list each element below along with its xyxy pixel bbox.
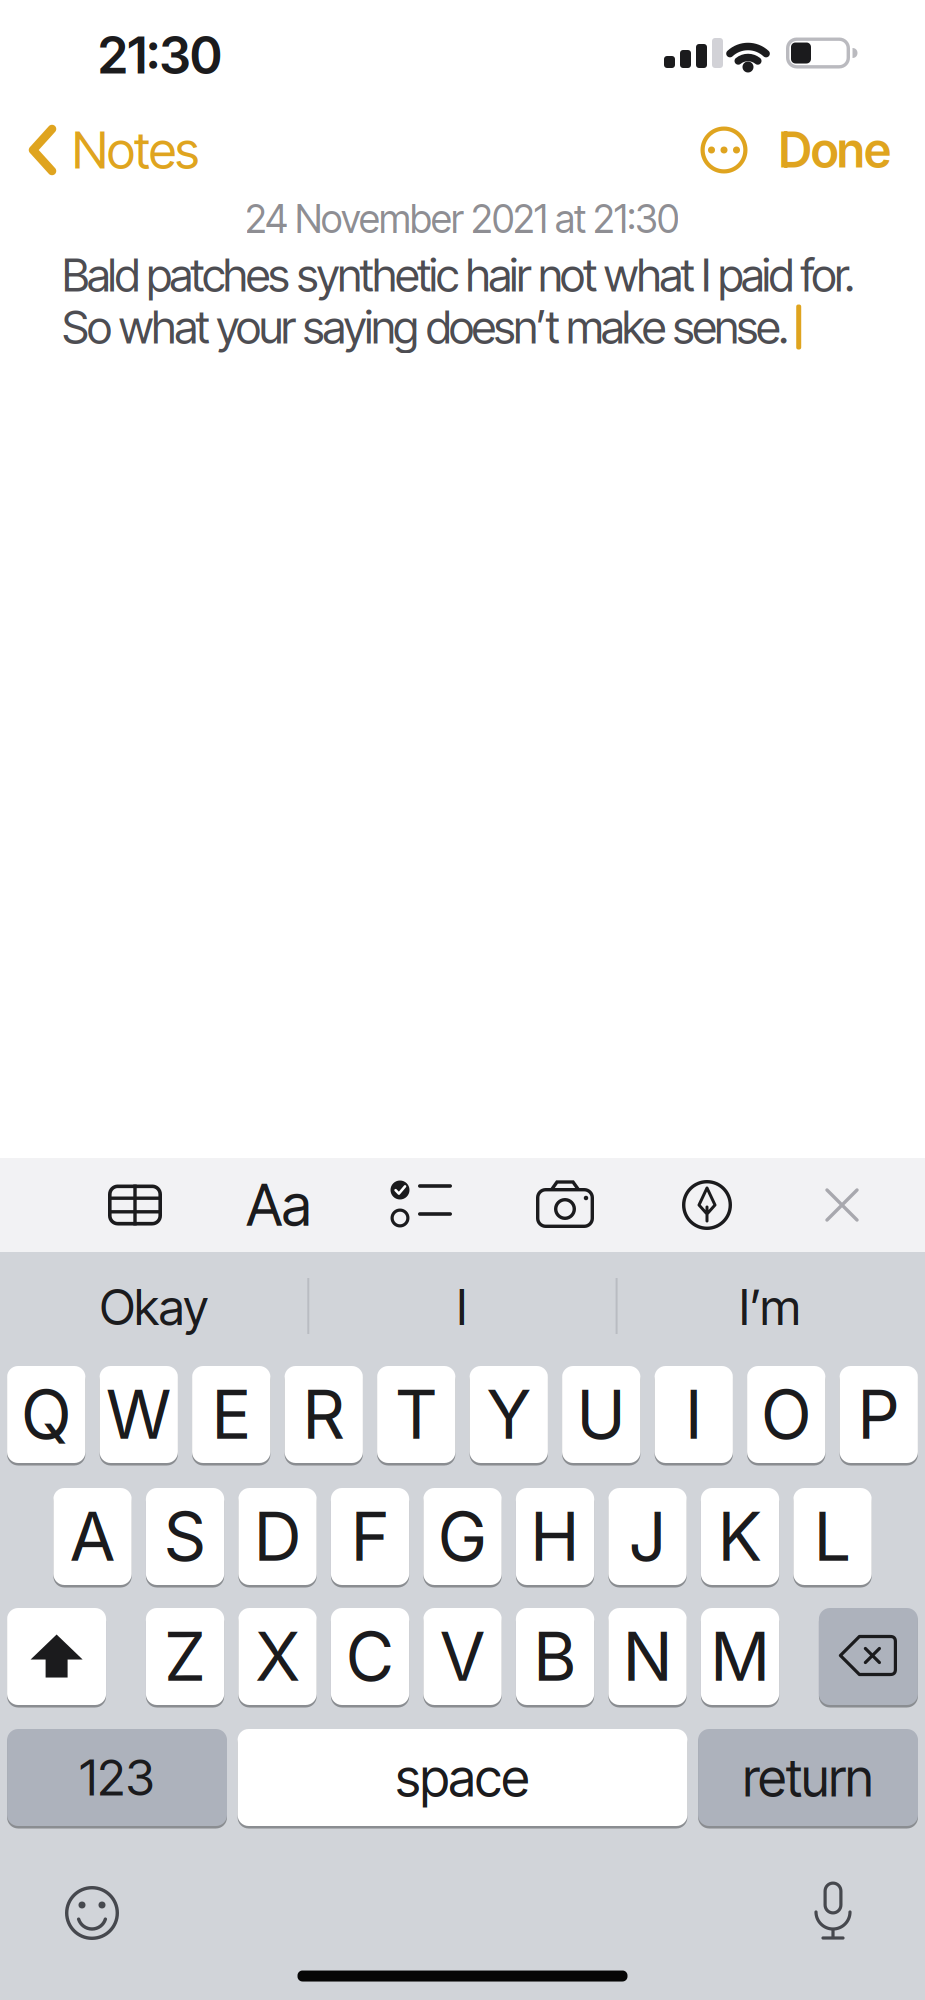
staticText: Okay xyxy=(100,1277,208,1337)
button[interactable]: 123 xyxy=(7,1727,227,1827)
button[interactable]: Okay xyxy=(14,1262,294,1352)
button[interactable]: L xyxy=(793,1486,872,1586)
button[interactable]: B xyxy=(516,1606,594,1706)
staticText: P xyxy=(857,1374,900,1455)
staticText: G xyxy=(437,1496,487,1577)
button[interactable]: U xyxy=(562,1364,640,1464)
button[interactable]: D xyxy=(238,1486,317,1586)
button[interactable]: Markup xyxy=(679,1177,735,1233)
staticText: N xyxy=(622,1616,672,1697)
staticText: return xyxy=(743,1746,873,1809)
button[interactable]: space xyxy=(238,1727,687,1827)
button[interactable]: M xyxy=(701,1606,779,1706)
button[interactable]: Camera xyxy=(532,1177,598,1233)
button[interactable]: Q xyxy=(7,1364,85,1464)
staticText: J xyxy=(628,1496,666,1577)
button[interactable]: return xyxy=(698,1727,918,1827)
staticText: Z xyxy=(164,1616,206,1697)
staticText: L xyxy=(813,1496,851,1577)
staticText: I xyxy=(456,1277,467,1337)
staticText: F xyxy=(350,1496,389,1577)
staticText: I xyxy=(685,1374,703,1455)
button[interactable]: K xyxy=(701,1486,779,1586)
button[interactable]: P xyxy=(840,1364,918,1464)
staticText: U xyxy=(576,1374,626,1455)
staticText: M xyxy=(710,1616,770,1697)
staticText: O xyxy=(761,1374,812,1455)
staticText: I’m xyxy=(739,1277,801,1337)
button[interactable]: F xyxy=(331,1486,409,1586)
staticText: A xyxy=(69,1496,115,1577)
button[interactable]: Y xyxy=(470,1364,548,1464)
staticText: K xyxy=(717,1496,762,1577)
button[interactable]: I xyxy=(655,1364,733,1464)
staticText: H xyxy=(530,1496,580,1577)
staticText: 24 November 2021 at 21:30 xyxy=(245,196,679,242)
button[interactable]: Dismiss keyboard xyxy=(820,1183,864,1227)
button[interactable]: O xyxy=(747,1364,825,1464)
staticText: B xyxy=(533,1616,577,1697)
button[interactable]: V xyxy=(423,1606,502,1706)
staticText: Done xyxy=(779,121,891,179)
button[interactable]: Shift xyxy=(7,1606,106,1706)
staticText: Bald patches synthetic hair not what I p… xyxy=(62,248,855,302)
staticText: X xyxy=(255,1616,300,1697)
staticText: D xyxy=(254,1496,302,1577)
button[interactable]: C xyxy=(331,1606,409,1706)
button[interactable]: E xyxy=(192,1364,270,1464)
button[interactable]: R xyxy=(285,1364,363,1464)
staticText: 123 xyxy=(79,1748,154,1807)
staticText: space xyxy=(395,1746,529,1809)
button[interactable]: Done xyxy=(779,119,891,181)
button[interactable]: S xyxy=(146,1486,224,1586)
button[interactable]: Dictation xyxy=(798,1876,868,1946)
staticText: Y xyxy=(486,1374,531,1455)
button[interactable]: G xyxy=(423,1486,502,1586)
staticText: E xyxy=(211,1374,251,1455)
staticText: 21:30 xyxy=(98,24,222,86)
button[interactable]: X xyxy=(238,1606,317,1706)
staticText: W xyxy=(106,1374,172,1455)
staticText: So what your saying doesn’t make sense. xyxy=(62,300,789,354)
button[interactable]: Emoji xyxy=(57,1878,127,1948)
button[interactable]: More options xyxy=(698,124,750,176)
button[interactable]: Z xyxy=(146,1606,224,1706)
staticText: S xyxy=(164,1496,207,1577)
button[interactable]: J xyxy=(608,1486,687,1586)
button[interactable]: Format xyxy=(239,1175,319,1235)
button[interactable]: I’m xyxy=(630,1262,910,1352)
staticText: R xyxy=(302,1374,345,1455)
button[interactable]: N xyxy=(608,1606,687,1706)
button[interactable]: T xyxy=(377,1364,455,1464)
staticText: Notes xyxy=(72,119,199,181)
staticText: V xyxy=(439,1616,485,1697)
button[interactable]: Back to Notes xyxy=(31,119,331,181)
button[interactable]: Delete xyxy=(819,1606,918,1706)
staticText: T xyxy=(395,1374,438,1455)
button[interactable]: W xyxy=(100,1364,178,1464)
staticText: Q xyxy=(21,1374,72,1455)
staticText: Aa xyxy=(246,1170,312,1240)
button[interactable]: I xyxy=(322,1262,602,1352)
staticText: C xyxy=(345,1616,394,1697)
button[interactable]: A xyxy=(53,1486,132,1586)
button[interactable]: H xyxy=(516,1486,594,1586)
button[interactable]: Insert table xyxy=(105,1179,165,1231)
button[interactable]: Checklist xyxy=(389,1177,453,1233)
